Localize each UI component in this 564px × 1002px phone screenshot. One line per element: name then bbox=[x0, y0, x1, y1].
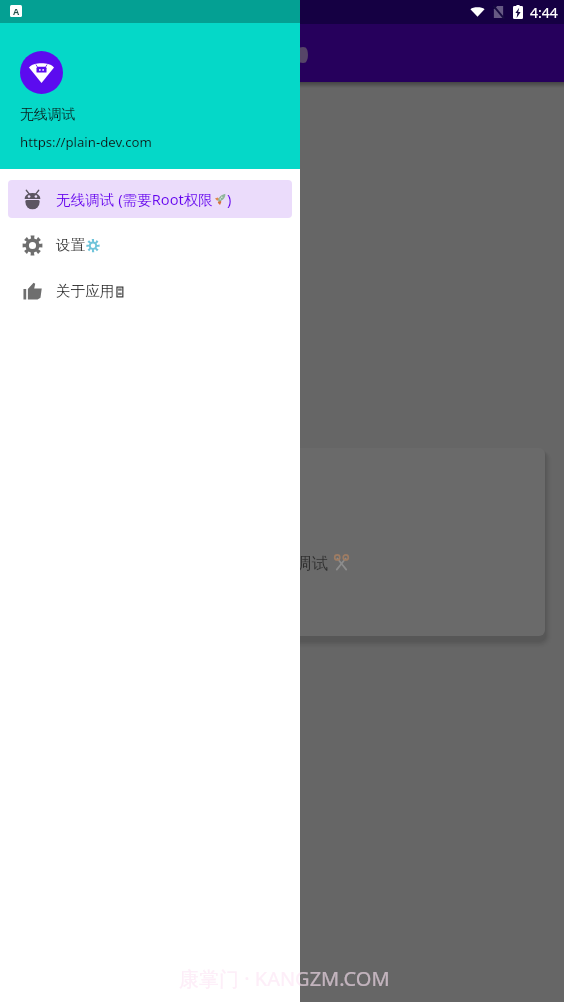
button[interactable]: 关于应用 bbox=[8, 272, 292, 310]
button[interactable]: Close navigation drawer bbox=[0, 0, 564, 1002]
staticText: 启用无线调试 bbox=[229, 551, 333, 574]
button[interactable]: Open navigation drawer bbox=[280, 41, 308, 69]
staticText: 无线调试 bbox=[20, 106, 76, 123]
staticText: https://plain-dev.com bbox=[20, 133, 152, 151]
button[interactable]: 无线调试 (需要Root权限 bbox=[8, 180, 292, 218]
staticText: 康掌门 · KANGZM.COM bbox=[179, 965, 390, 992]
button[interactable]: 设置 bbox=[8, 226, 292, 264]
staticText: ) bbox=[227, 189, 232, 209]
staticText: 无线调试 (需要Root权限 bbox=[56, 189, 213, 209]
staticText: A bbox=[13, 5, 20, 17]
staticText: 4:44 bbox=[530, 3, 558, 22]
button[interactable]: 启用无线调试 bbox=[19, 448, 545, 636]
staticText: 关于应用 bbox=[56, 282, 115, 300]
staticText: 设置 bbox=[56, 236, 86, 254]
